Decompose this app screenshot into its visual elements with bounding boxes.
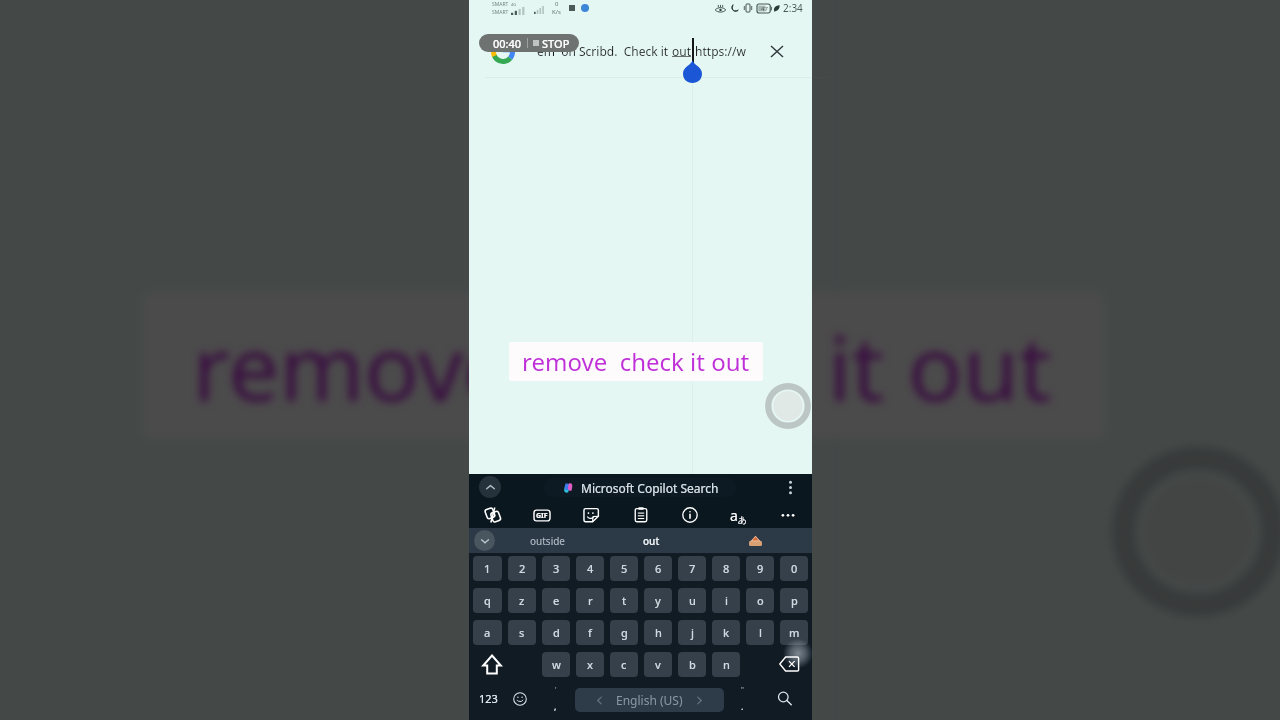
button[interactable]: f	[576, 620, 604, 645]
button[interactable]: English (US)	[575, 688, 724, 712]
staticText: 9	[757, 561, 764, 576]
button[interactable]: k	[712, 620, 740, 645]
button[interactable]: More	[776, 503, 800, 527]
staticText: q	[484, 593, 491, 608]
button[interactable]: Keyboard tools	[481, 503, 505, 527]
button[interactable]: e	[542, 588, 570, 613]
staticText: em on Scribd. Check it	[537, 43, 672, 59]
button[interactable]: 00:40	[479, 34, 579, 52]
button[interactable]: 3	[542, 556, 570, 581]
staticText: s	[519, 625, 525, 640]
staticText: '	[555, 685, 557, 695]
button[interactable]: GIF	[530, 503, 554, 527]
button[interactable]: Info	[678, 503, 702, 527]
staticText: m	[789, 625, 800, 640]
button[interactable]: x	[576, 652, 604, 677]
staticText: k	[723, 625, 730, 640]
button[interactable]: h	[644, 620, 672, 645]
button[interactable]: Clipboard	[629, 503, 653, 527]
staticText: out	[643, 534, 660, 548]
staticText: K/s	[552, 8, 561, 16]
staticText: d	[553, 625, 560, 640]
staticText: e	[553, 593, 560, 608]
button[interactable]: 2	[508, 556, 536, 581]
staticText: n	[723, 657, 730, 672]
button[interactable]: n	[712, 652, 740, 677]
staticText: STOP	[542, 36, 570, 51]
button[interactable]: More options	[779, 476, 801, 498]
button[interactable]: Collapse suggestions	[474, 530, 495, 551]
button[interactable]: out	[599, 528, 703, 553]
button[interactable]: 5	[610, 556, 638, 581]
button[interactable]: r	[576, 588, 604, 613]
staticText: remove check it out	[522, 345, 750, 378]
button[interactable]: z	[508, 588, 536, 613]
staticText: SMART	[492, 9, 509, 16]
staticText: 3	[553, 561, 560, 576]
staticText: 0	[555, 0, 559, 8]
button[interactable]: 0	[780, 556, 808, 581]
button[interactable]: 4	[576, 556, 604, 581]
button[interactable]: g	[610, 620, 638, 645]
staticText: 2:34	[783, 1, 803, 15]
staticText: h	[655, 625, 662, 640]
button[interactable]: a	[473, 620, 502, 645]
button[interactable]: Translate	[727, 503, 751, 527]
staticText: 5	[621, 561, 628, 576]
button[interactable]: w	[542, 652, 570, 677]
staticText: .	[741, 700, 744, 712]
staticText: SMART	[492, 1, 509, 8]
staticText: r	[588, 593, 593, 608]
button[interactable]: Microsoft Copilot Search	[544, 478, 736, 497]
staticText: x	[587, 657, 593, 672]
button[interactable]: s	[508, 620, 536, 645]
staticText: 2	[519, 561, 526, 576]
staticText: i	[725, 593, 728, 608]
staticText: c	[621, 657, 627, 672]
button[interactable]: Sticker suggestion	[703, 528, 807, 553]
staticText: f	[588, 625, 592, 640]
button[interactable]: b	[678, 652, 706, 677]
button[interactable]: Close	[761, 35, 793, 67]
button[interactable]: 7	[678, 556, 706, 581]
button[interactable]: "	[728, 677, 756, 720]
button[interactable]: o	[746, 588, 774, 613]
button[interactable]: q	[473, 588, 502, 613]
button[interactable]: Search	[768, 677, 800, 720]
staticText: u	[689, 593, 696, 608]
button[interactable]: 6	[644, 556, 672, 581]
button[interactable]: 1	[473, 556, 502, 581]
button[interactable]: l	[746, 620, 774, 645]
button[interactable]: outside	[495, 528, 599, 553]
button[interactable]: j	[678, 620, 706, 645]
staticText: "	[741, 685, 744, 695]
staticText: 0	[791, 561, 798, 576]
button[interactable]: u	[678, 588, 706, 613]
staticText: a	[730, 506, 738, 525]
button[interactable]: y	[644, 588, 672, 613]
button[interactable]: Backspace	[746, 652, 808, 677]
button[interactable]: p	[780, 588, 808, 613]
staticText: g	[621, 625, 628, 640]
staticText: p	[791, 593, 798, 608]
button[interactable]: Stickers	[579, 503, 603, 527]
button[interactable]: d	[542, 620, 570, 645]
button[interactable]: 8	[712, 556, 740, 581]
button[interactable]: i	[712, 588, 740, 613]
staticText: ,	[554, 700, 557, 712]
staticText: out	[672, 43, 692, 59]
button[interactable]: c	[610, 652, 638, 677]
staticText: 123	[479, 691, 498, 706]
staticText: GIF	[536, 511, 548, 521]
button[interactable]: v	[644, 652, 672, 677]
button[interactable]: m	[780, 620, 808, 645]
button[interactable]: 9	[746, 556, 774, 581]
button[interactable]: Emoji	[504, 677, 536, 720]
button[interactable]: 123	[469, 677, 507, 720]
button[interactable]: Expand keyboard	[479, 476, 501, 498]
staticText: l	[759, 625, 762, 640]
staticText: English (US)	[616, 692, 683, 708]
button[interactable]: Shift	[473, 652, 536, 677]
button[interactable]: '	[541, 677, 569, 720]
button[interactable]: t	[610, 588, 638, 613]
